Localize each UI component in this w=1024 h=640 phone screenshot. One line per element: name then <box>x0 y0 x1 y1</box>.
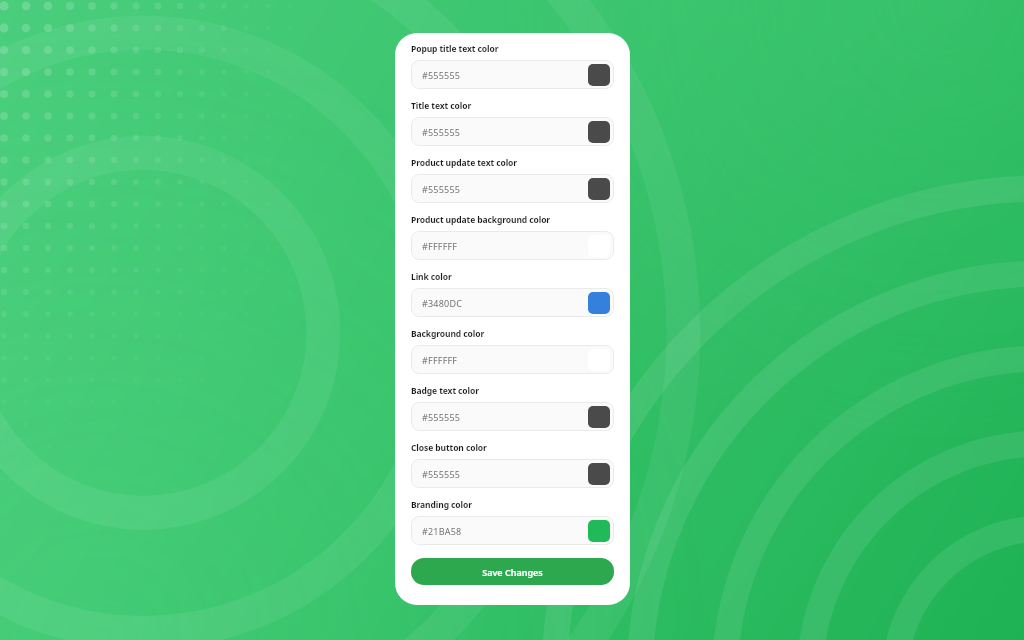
button[interactable]: Pick Link color <box>588 292 610 314</box>
button[interactable]: Pick Badge text color <box>588 406 610 428</box>
staticText: Save Changes <box>482 566 543 578</box>
button[interactable]: #555555 <box>411 402 614 431</box>
staticText: #555555 <box>422 183 461 195</box>
button[interactable]: #FFFFFF <box>411 231 614 260</box>
staticText: #FFFFFF <box>422 354 458 366</box>
staticText: #21BA58 <box>422 525 462 537</box>
button[interactable]: #555555 <box>411 60 614 89</box>
staticText: Branding color <box>411 499 472 511</box>
button[interactable]: #FFFFFF <box>411 345 614 374</box>
staticText: Badge text color <box>411 385 479 397</box>
staticText: #555555 <box>422 411 461 423</box>
staticText: Link color <box>411 271 452 283</box>
staticText: #555555 <box>422 468 461 480</box>
staticText: Title text color <box>411 100 472 112</box>
button[interactable]: Pick Title text color <box>588 121 610 143</box>
button[interactable]: Pick Product update text color <box>588 178 610 200</box>
staticText: #3480DC <box>422 297 463 309</box>
button[interactable]: #555555 <box>411 174 614 203</box>
button[interactable]: #555555 <box>411 117 614 146</box>
staticText: Background color <box>411 328 485 340</box>
staticText: Close button color <box>411 442 487 454</box>
staticText: #555555 <box>422 69 461 81</box>
button[interactable]: #555555 <box>411 459 614 488</box>
staticText: Product update background color <box>411 214 551 226</box>
button[interactable]: Save Changes <box>411 558 614 585</box>
button[interactable]: Pick Popup title text color <box>588 64 610 86</box>
button[interactable]: #21BA58 <box>411 516 614 545</box>
button[interactable]: #3480DC <box>411 288 614 317</box>
button[interactable]: Pick Branding color <box>588 520 610 542</box>
staticText: Product update text color <box>411 157 517 169</box>
staticText: Popup title text color <box>411 43 499 55</box>
staticText: #FFFFFF <box>422 240 458 252</box>
staticText: #555555 <box>422 126 461 138</box>
button[interactable]: Pick Close button color <box>588 463 610 485</box>
